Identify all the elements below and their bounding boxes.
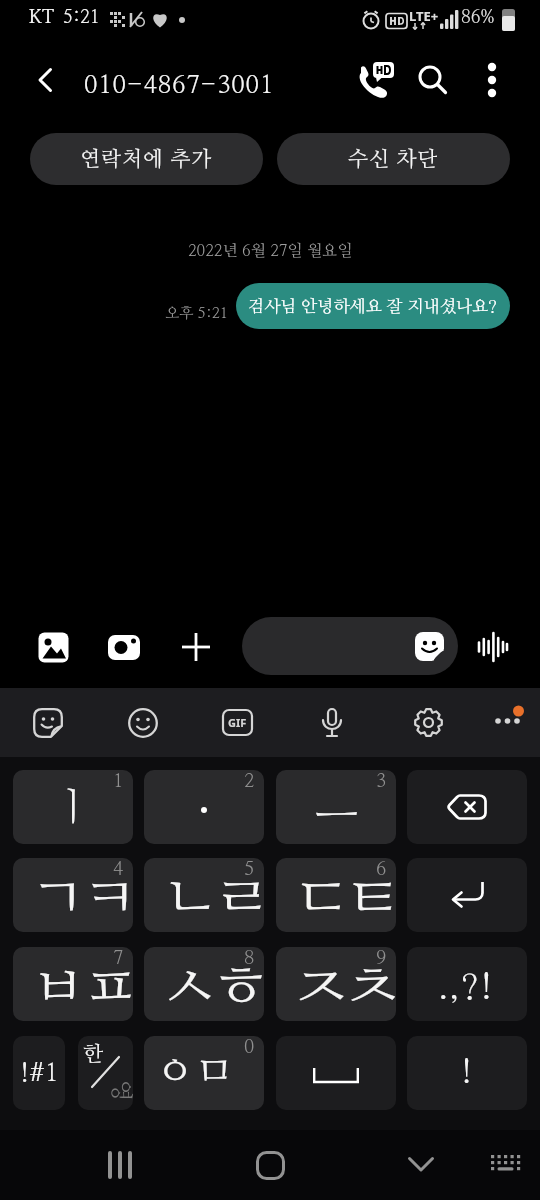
button[interactable]: .,?! [407,947,527,1021]
staticText: ㅅㅎ [162,960,264,1018]
staticText: !#1 [20,1061,59,1086]
staticText: .,?! [439,972,495,1005]
staticText: 1 [113,772,124,791]
button[interactable]: ㅇㅁ [144,1036,264,1110]
staticText: 한 [83,1044,103,1065]
staticText: 86% [461,9,495,27]
staticText: ㄱㅋ [31,871,133,929]
button[interactable]: ㅂㅍ [13,947,133,1021]
button[interactable]: 수신 차단 [277,133,510,185]
button[interactable] [407,770,527,844]
button[interactable] [470,58,514,102]
button[interactable] [470,624,516,670]
staticText: KT [29,9,55,27]
staticText: ㅂㅍ [31,960,133,1018]
staticText: 7 [113,949,124,968]
staticText: LTE+ [409,7,439,25]
button[interactable] [101,624,147,670]
staticText: 3 [376,772,387,791]
staticText: GIF [228,715,247,730]
button[interactable] [245,1142,295,1188]
button[interactable] [24,58,68,102]
button[interactable]: 한 [78,1036,133,1110]
button[interactable] [242,617,458,675]
button[interactable] [396,1142,446,1188]
button[interactable] [404,700,452,745]
staticText: 2 [244,772,255,791]
staticText: 2022년 6월 27일 월요일 [188,243,353,259]
staticText: ㅣ [55,789,91,826]
staticText: 수신 차단 [348,149,439,170]
staticText: 검사님 안녕하세요 잘 지내셨나요? [248,298,498,315]
button[interactable]: ㄴㄹ [144,858,264,932]
button[interactable] [276,1036,396,1110]
button[interactable]: ㄷㅌ [276,858,396,932]
button[interactable]: !#1 [13,1036,65,1110]
button[interactable] [407,858,527,932]
button[interactable]: ㅈㅊ [276,947,396,1021]
staticText: 5 [244,860,255,879]
button[interactable]: ! [407,1036,527,1110]
button[interactable] [411,59,455,103]
staticText: ㅡ [315,785,358,830]
button[interactable] [484,1142,528,1188]
staticText: 9 [376,949,387,968]
button[interactable]: ㅅㅎ [144,947,264,1021]
staticText: 6 [376,860,387,879]
button[interactable] [30,624,76,670]
staticText: ㅇㅁ [155,1051,233,1093]
button[interactable] [488,700,530,745]
button[interactable] [350,56,400,106]
staticText: 연락처에 추가 [80,149,213,170]
button[interactable]: GIF [215,700,260,745]
button[interactable] [309,700,354,745]
button[interactable]: ㄱㅋ [13,858,133,932]
button[interactable]: ㅡ [276,770,396,844]
button[interactable]: ㅣ [13,770,133,844]
button[interactable] [95,1142,145,1188]
staticText: 010-4867-3001 [84,73,275,98]
button[interactable]: 연락처에 추가 [30,133,263,185]
staticText: 4 [113,860,124,879]
staticText: 오후 5:21 [165,306,228,321]
button[interactable] [25,700,70,745]
staticText: ㄴㄹ [162,871,264,929]
staticText: 영 [108,1079,131,1101]
staticText: 8 [244,949,255,968]
staticText: 5:21 [63,9,100,27]
button[interactable] [120,700,165,745]
button[interactable]: 2 [144,770,264,844]
staticText: 0 [244,1038,255,1057]
button[interactable] [173,624,219,670]
staticText: ㅈㅊ [294,960,396,1018]
staticText: ㄷㅌ [294,871,396,929]
staticText: ! [461,1058,473,1088]
